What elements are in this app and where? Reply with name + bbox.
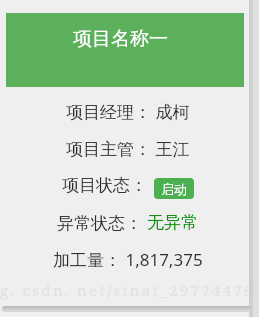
button[interactable]: 项目名称一 [6,13,244,87]
staticText: 项目状态： [62,175,147,196]
button[interactable]: 启动 [154,178,194,199]
staticText: 无异常 [147,212,198,233]
staticText: 项目名称一 [73,27,168,51]
button[interactable]: 异常状态： [0,204,257,241]
button[interactable]: 项目经理： 成柯 [0,93,259,130]
staticText: 项目经理： 成柯 [66,100,190,123]
button[interactable]: 项目主管： 王江 [0,130,259,167]
staticText: g. csdn. net/sinat_29774479 [0,280,255,300]
button[interactable]: 加工量： 1,817,375 [0,241,259,278]
staticText: 加工量： 1,817,375 [53,248,203,271]
button[interactable]: 项目状态： [0,167,257,204]
staticText: 异常状态： [57,211,147,234]
staticText: 项目主管： 王江 [66,137,190,160]
staticText: 启动 [161,181,187,197]
